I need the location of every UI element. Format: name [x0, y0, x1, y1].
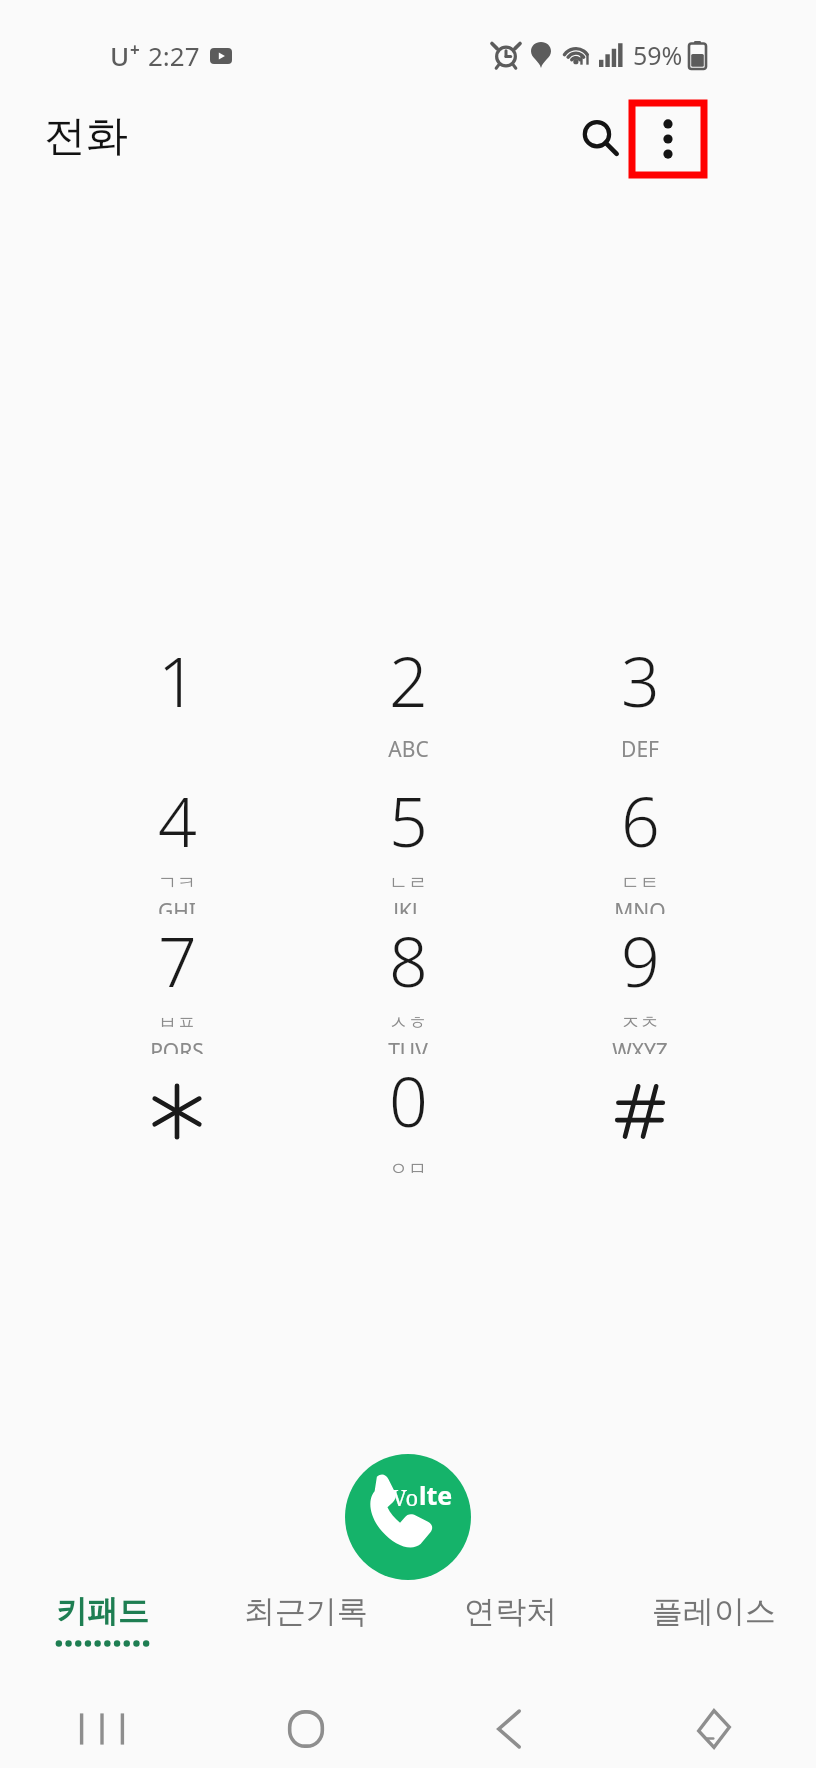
staticText: 연락처	[464, 1592, 557, 1631]
button[interactable]: 5	[293, 774, 523, 914]
staticText: 키패드	[56, 1592, 149, 1631]
staticText: 2:27	[148, 38, 200, 73]
button[interactable]	[62, 1054, 292, 1194]
staticText: +	[130, 38, 140, 61]
staticText: JKL	[393, 897, 423, 914]
staticText: 4	[158, 774, 197, 867]
staticText: ㄷㅌ	[621, 871, 659, 895]
staticText: 9	[621, 914, 660, 1007]
button[interactable]: 플레이스	[612, 1592, 816, 1682]
button[interactable]: Hide keyboard	[612, 1690, 816, 1768]
button[interactable]: 6	[525, 774, 755, 914]
staticText: TUV	[388, 1037, 428, 1054]
button[interactable]: More options	[632, 103, 704, 175]
staticText: ㄴㄹ	[389, 871, 427, 895]
staticText: 최근기록	[244, 1592, 368, 1631]
button[interactable]: Call	[345, 1454, 471, 1580]
staticText: 59%	[633, 38, 683, 72]
staticText: MNO	[614, 897, 666, 914]
staticText: 3	[621, 634, 660, 727]
staticText: 5	[389, 774, 428, 867]
button[interactable]: 연락처	[408, 1592, 612, 1682]
staticText: 2	[389, 634, 428, 727]
staticText: ㅇㅁ	[389, 1157, 427, 1181]
staticText: U	[110, 38, 130, 73]
staticText: 0	[389, 1054, 428, 1147]
button[interactable]: Back	[408, 1690, 612, 1768]
button[interactable]: 키패드	[0, 1592, 204, 1682]
staticText: ㅅㅎ	[389, 1011, 427, 1035]
staticText: WXYZ	[612, 1037, 668, 1054]
button[interactable]: 최근기록	[204, 1592, 408, 1682]
staticText: 6	[621, 774, 660, 867]
staticText: 8	[389, 914, 428, 1007]
staticText: GHI	[158, 897, 196, 914]
staticText: 1	[158, 634, 197, 727]
button[interactable]: 7	[62, 914, 292, 1054]
staticText: ㅂㅍ	[158, 1011, 196, 1035]
button[interactable]: Search	[560, 98, 640, 178]
button[interactable]	[525, 1054, 755, 1194]
button[interactable]: 9	[525, 914, 755, 1054]
staticText: 플레이스	[652, 1592, 776, 1631]
button[interactable]: Home	[204, 1690, 408, 1768]
button[interactable]: 8	[293, 914, 523, 1054]
staticText: lte	[419, 1478, 453, 1512]
staticText: DEF	[621, 735, 659, 764]
staticText: ㄱㅋ	[158, 871, 196, 895]
button[interactable]: 2	[293, 634, 523, 774]
button[interactable]: 1	[62, 634, 292, 774]
button[interactable]: 3	[525, 634, 755, 774]
staticText: 7	[158, 914, 197, 1007]
button[interactable]: 0	[293, 1054, 523, 1194]
staticText: ABC	[388, 735, 429, 764]
staticText: 전화	[44, 110, 128, 163]
button[interactable]: 4	[62, 774, 292, 914]
staticText: PQRS	[150, 1037, 204, 1054]
staticText: Vo	[392, 1482, 419, 1512]
button[interactable]: Recent apps	[0, 1690, 204, 1768]
staticText: ㅈㅊ	[621, 1011, 659, 1035]
